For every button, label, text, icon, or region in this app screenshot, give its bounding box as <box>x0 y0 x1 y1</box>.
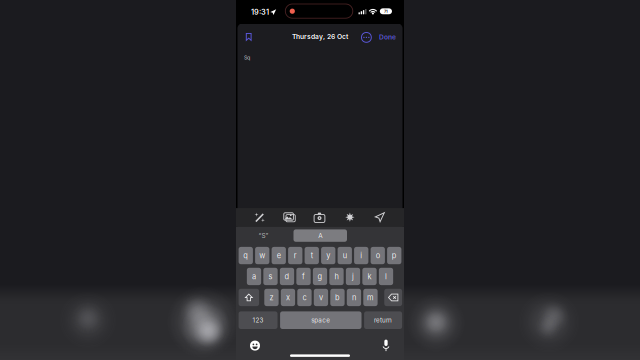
button[interactable]: Insert photo <box>0 0 640 360</box>
button[interactable]: g <box>0 0 640 360</box>
button[interactable]: d <box>0 0 640 360</box>
button[interactable]: y <box>0 0 640 360</box>
button[interactable]: f <box>0 0 640 360</box>
button[interactable]: Dictation <box>0 0 640 360</box>
button[interactable]: u <box>0 0 640 360</box>
button[interactable]: space <box>0 0 640 360</box>
button[interactable]: Emoji keyboard <box>0 0 640 360</box>
staticText: q <box>243 251 248 260</box>
staticText: s <box>268 272 272 281</box>
button[interactable]: return <box>0 0 640 360</box>
button[interactable]: Delete <box>0 0 640 360</box>
button[interactable]: q <box>0 0 640 360</box>
staticText: w <box>259 251 265 260</box>
button[interactable]: Shift <box>0 0 640 360</box>
button[interactable]: l <box>0 0 640 360</box>
staticText: r <box>294 251 297 260</box>
staticText: a <box>252 272 256 281</box>
staticText: g <box>317 272 322 281</box>
staticText: o <box>376 251 380 260</box>
button[interactable]: Share <box>0 0 640 360</box>
staticText: n <box>352 293 356 302</box>
staticText: f <box>302 272 305 281</box>
staticText: k <box>367 272 371 281</box>
button[interactable]: c <box>0 0 640 360</box>
staticText: h <box>334 272 338 281</box>
staticText: p <box>392 251 397 260</box>
button[interactable]: Format text <box>0 0 640 360</box>
button[interactable]: p <box>0 0 640 360</box>
button[interactable]: “S” <box>0 0 640 360</box>
staticText: b <box>335 293 340 302</box>
staticText: z <box>269 293 273 302</box>
button[interactable]: n <box>0 0 640 360</box>
staticText: 123 <box>253 316 264 324</box>
button[interactable]: o <box>0 0 640 360</box>
staticText: v <box>319 293 323 302</box>
button[interactable]: i <box>0 0 640 360</box>
button[interactable]: 123 <box>0 0 640 360</box>
button[interactable]: Done <box>0 0 640 360</box>
staticText: u <box>343 251 347 260</box>
button[interactable]: e <box>0 0 640 360</box>
staticText: d <box>284 272 289 281</box>
button[interactable]: z <box>0 0 640 360</box>
staticText: t <box>311 251 313 260</box>
button[interactable]: a <box>0 0 640 360</box>
staticText: e <box>277 251 281 260</box>
button[interactable]: s <box>0 0 640 360</box>
staticText: l <box>385 272 387 281</box>
staticText: c <box>302 293 306 302</box>
staticText: Done <box>379 33 396 41</box>
button[interactable]: k <box>0 0 640 360</box>
button[interactable]: b <box>0 0 640 360</box>
button[interactable]: t <box>0 0 640 360</box>
staticText: y <box>326 251 330 260</box>
staticText: 19:31 <box>251 8 269 17</box>
button[interactable]: Markup <box>0 0 640 360</box>
staticText: x <box>286 293 290 302</box>
staticText: i <box>360 251 362 260</box>
button[interactable]: m <box>0 0 640 360</box>
staticText: Thursday, 26 Oct <box>292 33 348 41</box>
staticText: space <box>311 316 330 324</box>
button[interactable]: w <box>0 0 640 360</box>
button[interactable]: More options <box>0 0 640 360</box>
button[interactable]: A <box>0 0 640 360</box>
button[interactable]: x <box>0 0 640 360</box>
button[interactable]: Take photo <box>0 0 640 360</box>
button[interactable]: h <box>0 0 640 360</box>
staticText: 71 <box>384 9 388 14</box>
staticText: “S” <box>259 232 269 239</box>
staticText: A <box>318 232 322 239</box>
staticText: j <box>352 272 354 281</box>
staticText: Sq <box>244 54 250 61</box>
button[interactable]: r <box>0 0 640 360</box>
button[interactable]: j <box>0 0 640 360</box>
staticText: return <box>374 316 392 324</box>
button[interactable]: Bookmark <box>0 0 640 360</box>
staticText: m <box>367 293 374 302</box>
button[interactable]: v <box>0 0 640 360</box>
